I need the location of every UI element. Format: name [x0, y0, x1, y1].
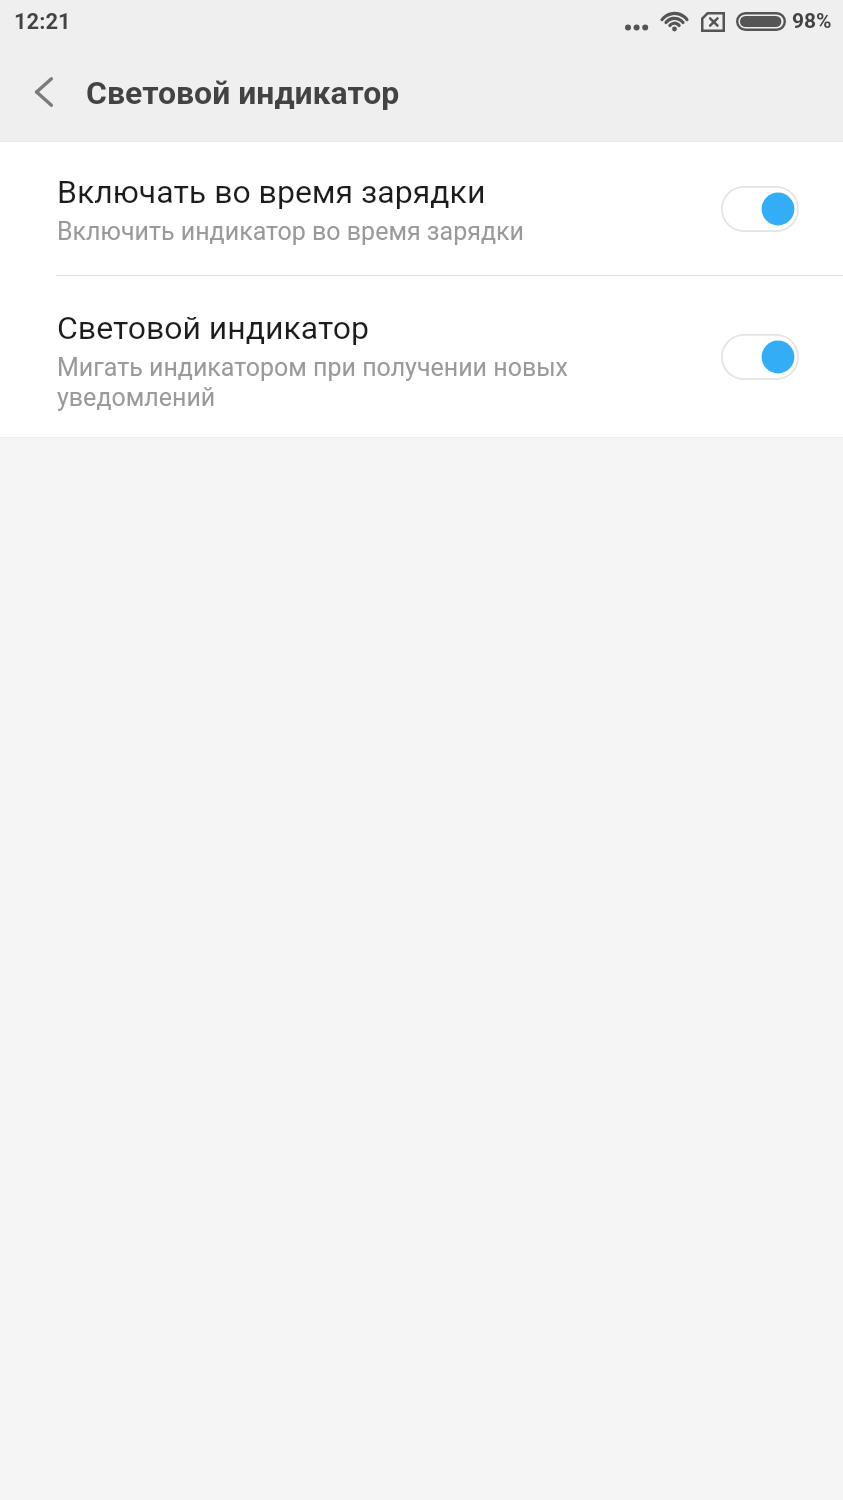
button[interactable]: Включать во время зарядки	[0, 142, 843, 275]
button[interactable]: Включать во время зарядки, включено	[721, 186, 799, 232]
button[interactable]: Световой индикатор, включено	[721, 334, 799, 380]
staticText: Мигать индикатором при получении новых у…	[57, 353, 569, 412]
staticText: Включить индикатор во время зарядки	[57, 217, 524, 246]
staticText: 12:21	[14, 9, 71, 35]
staticText: Световой индикатор	[57, 309, 369, 347]
staticText: Световой индикатор	[86, 74, 400, 112]
button[interactable]: Световой индикатор	[0, 276, 843, 437]
staticText: 98%	[792, 9, 832, 34]
staticText: Включать во время зарядки	[57, 173, 486, 211]
button[interactable]: Back	[0, 55, 86, 141]
